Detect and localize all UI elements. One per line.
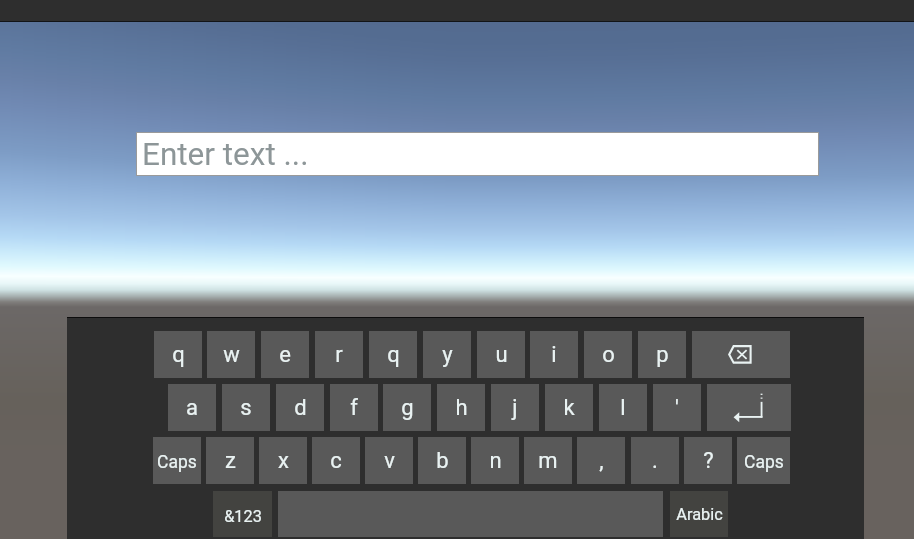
- staticText: Caps: [744, 452, 784, 473]
- button[interactable]: u: [477, 331, 525, 378]
- button[interactable]: ': [653, 384, 701, 431]
- staticText: a: [186, 395, 198, 421]
- button[interactable]: h: [437, 384, 485, 431]
- staticText: &123: [224, 507, 262, 526]
- button[interactable]: i: [530, 331, 578, 378]
- staticText: o: [602, 342, 615, 368]
- button[interactable]: f: [330, 384, 378, 431]
- button[interactable]: q: [154, 331, 202, 378]
- staticText: ': [675, 395, 679, 421]
- staticText: Caps: [157, 452, 197, 473]
- staticText: ?: [703, 448, 714, 474]
- staticText: j: [512, 395, 518, 421]
- staticText: k: [563, 395, 575, 421]
- button[interactable]: Caps: [153, 437, 201, 484]
- staticText: x: [278, 448, 289, 474]
- button[interactable]: ,: [577, 437, 625, 484]
- staticText: Arabic: [676, 505, 723, 524]
- button[interactable]: z: [206, 437, 254, 484]
- staticText: Enter text ...: [142, 136, 309, 173]
- button[interactable]: e: [261, 331, 309, 378]
- staticText: q: [172, 342, 185, 368]
- staticText: l: [620, 395, 626, 421]
- staticText: m: [538, 448, 558, 474]
- staticText: v: [384, 448, 395, 474]
- button[interactable]: a: [168, 384, 216, 431]
- button[interactable]: v: [365, 437, 413, 484]
- button[interactable]: m: [524, 437, 572, 484]
- button[interactable]: d: [276, 384, 324, 431]
- button[interactable]: r: [315, 331, 363, 378]
- button[interactable]: p: [638, 331, 686, 378]
- staticText: u: [495, 342, 508, 368]
- button[interactable]: g: [383, 384, 431, 431]
- staticText: r: [335, 342, 343, 368]
- staticText: n: [489, 448, 502, 474]
- button[interactable]: k: [545, 384, 593, 431]
- button[interactable]: x: [259, 437, 307, 484]
- button[interactable]: Arabic: [670, 491, 728, 537]
- staticText: .: [652, 448, 658, 474]
- staticText: ,: [599, 448, 604, 474]
- button[interactable]: s: [222, 384, 270, 431]
- staticText: b: [436, 448, 449, 474]
- button[interactable]: Enter text ...: [137, 133, 818, 175]
- button[interactable]: &123: [213, 491, 272, 537]
- button[interactable]: j: [491, 384, 539, 431]
- staticText: p: [656, 342, 669, 368]
- staticText: q: [387, 342, 400, 368]
- button[interactable]: w: [207, 331, 255, 378]
- button[interactable]: y: [423, 331, 471, 378]
- staticText: y: [442, 342, 453, 368]
- button[interactable]: Backspace: [692, 331, 790, 378]
- staticText: h: [455, 395, 468, 421]
- button[interactable]: o: [584, 331, 632, 378]
- button[interactable]: n: [471, 437, 519, 484]
- button[interactable]: b: [418, 437, 466, 484]
- button[interactable]: Enter: [707, 384, 791, 431]
- staticText: i: [551, 342, 557, 368]
- staticText: z: [225, 448, 236, 474]
- staticText: w: [223, 342, 240, 368]
- button[interactable]: Caps: [737, 437, 790, 484]
- staticText: e: [279, 342, 291, 368]
- staticText: f: [350, 395, 358, 421]
- staticText: d: [294, 395, 307, 421]
- button[interactable]: l: [599, 384, 647, 431]
- button[interactable]: q: [369, 331, 417, 378]
- staticText: c: [330, 448, 342, 474]
- staticText: s: [240, 395, 252, 421]
- staticText: g: [401, 395, 414, 421]
- button[interactable]: c: [312, 437, 360, 484]
- button[interactable]: .: [631, 437, 679, 484]
- button[interactable]: ?: [684, 437, 732, 484]
